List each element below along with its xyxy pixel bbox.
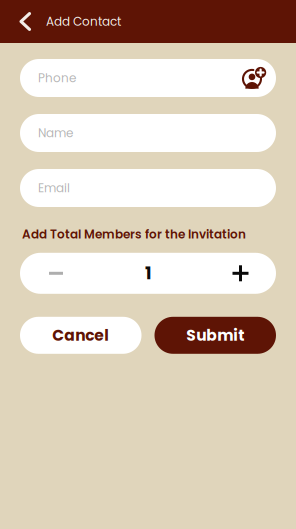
button[interactable]: Back [0, 0, 46, 43]
button[interactable]: Increase [205, 253, 276, 294]
button[interactable]: Decrease [20, 253, 92, 294]
staticText: Add Total Members for the Invitation [22, 226, 246, 243]
staticText: Phone [38, 70, 76, 86]
staticText: Add Contact [46, 13, 121, 30]
staticText: Name [38, 125, 73, 141]
button[interactable]: Email [20, 169, 276, 207]
button[interactable]: Name [20, 114, 276, 152]
staticText: Email [38, 180, 70, 196]
staticText: 1 [145, 261, 152, 285]
button[interactable]: Phone [20, 59, 276, 97]
staticText: Submit [186, 324, 244, 346]
button[interactable]: Cancel [20, 317, 141, 354]
button[interactable]: Submit [154, 317, 276, 354]
staticText: Cancel [52, 324, 109, 346]
